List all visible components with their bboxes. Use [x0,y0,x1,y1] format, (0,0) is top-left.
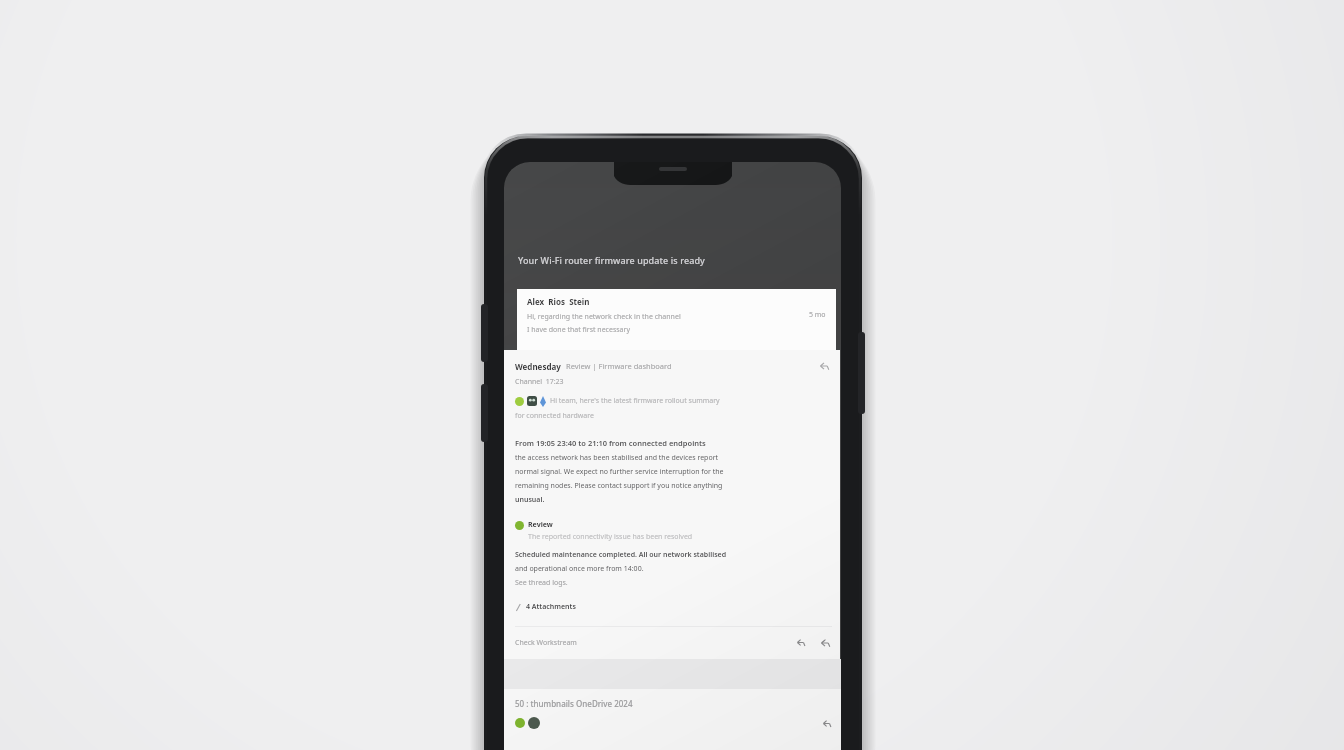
button[interactable]: Your Wi-Fi router firmware update is rea… [504,254,841,266]
button[interactable]: Reply [818,359,832,373]
button[interactable]: More [821,717,833,729]
staticText: From 19:05 23:40 to 21:10 from connected… [515,438,706,448]
staticText: Alex Rios Stein [527,296,590,307]
button[interactable]: Reply [795,636,808,649]
staticText: Hi, regarding the network check in the c… [527,312,681,322]
staticText: 50 : thumbnails OneDrive 2024 [515,698,633,709]
button[interactable]: Alex Rios Stein [517,289,836,350]
button[interactable]: Volume down [481,384,488,442]
staticText: Review | Firmware dashboard [566,361,818,371]
button[interactable]: Wednesday [515,359,832,373]
staticText: Review [528,520,553,530]
staticText: Your Wi-Fi router firmware update is rea… [518,254,705,266]
staticText: 5 mo [809,310,826,320]
staticText: for connected hardware [515,411,594,421]
button[interactable]: Check Workstream [515,638,577,648]
button[interactable]: Volume up [481,304,488,362]
staticText: Scheduled maintenance completed. All our… [515,550,727,560]
staticText: I have done that first necessary [527,325,631,335]
button[interactable]: 4 Attachments [515,602,576,612]
staticText: remaining nodes. Please contact support … [515,481,723,491]
staticText: Wednesday [515,361,561,372]
staticText: the access network has been stabilised a… [515,453,719,463]
button[interactable]: Reply all [819,636,832,649]
staticText: The reported connectivity issue has been… [528,532,693,542]
staticText: and operational once more from 14:00. [515,564,644,574]
staticText: normal signal. We expect no further serv… [515,467,724,477]
staticText: Hi team, here's the latest firmware roll… [550,396,720,406]
button[interactable]: Power [858,332,865,414]
button[interactable]: 50 : thumbnails OneDrive 2024 [504,689,841,750]
staticText: unusual. [515,495,545,505]
staticText: See thread logs. [515,578,568,588]
staticText: Channel 17:23 [515,377,564,387]
staticText: 4 Attachments [526,602,576,612]
